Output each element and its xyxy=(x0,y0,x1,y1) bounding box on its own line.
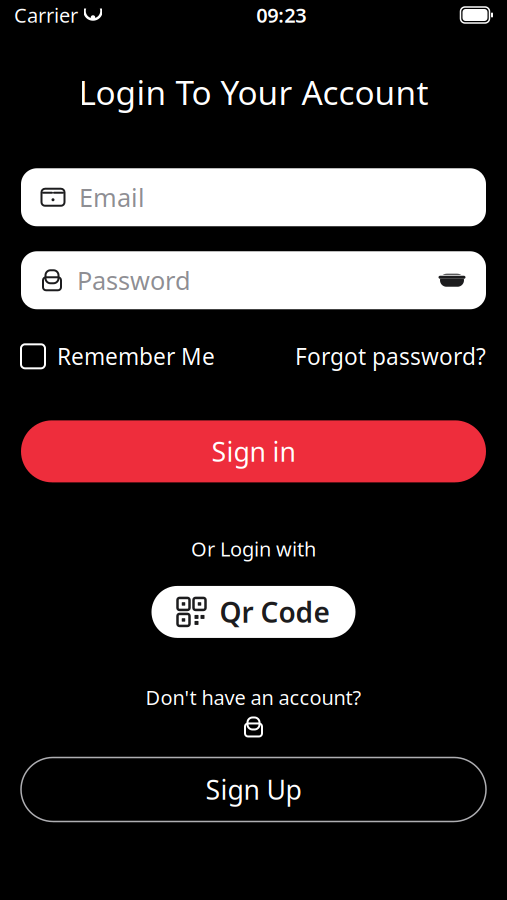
button[interactable]: Show password xyxy=(434,262,470,298)
staticText: Sign Up xyxy=(205,772,301,807)
button[interactable]: Qr Code xyxy=(151,586,355,638)
button[interactable]: Sign Up xyxy=(21,757,486,821)
staticText: Sign in xyxy=(211,434,295,469)
staticText: Qr Code xyxy=(219,593,329,630)
staticText: Carrier xyxy=(14,2,78,28)
button[interactable]: Remember Me xyxy=(21,337,215,375)
staticText: Forgot password? xyxy=(295,341,486,371)
staticText: 09:23 xyxy=(256,2,306,28)
button[interactable]: Forgot password? xyxy=(295,337,486,375)
staticText: Don't have an account? xyxy=(145,684,361,710)
staticText: Email xyxy=(79,180,145,214)
staticText: Remember Me xyxy=(57,341,215,371)
button[interactable]: Sign in xyxy=(21,420,486,482)
staticText: Or Login with xyxy=(191,535,316,562)
staticText: Login To Your Account xyxy=(78,70,428,114)
staticText: Password xyxy=(77,263,191,297)
